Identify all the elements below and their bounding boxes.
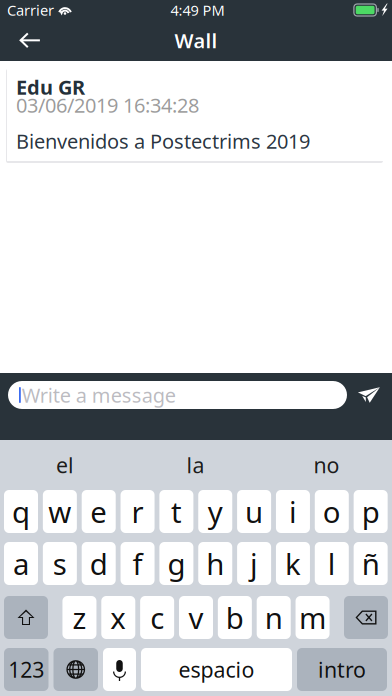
button[interactable]: e xyxy=(82,490,116,533)
staticText: x xyxy=(110,598,126,637)
button[interactable]: el xyxy=(0,440,130,490)
staticText: Write a message xyxy=(22,382,176,408)
button[interactable] xyxy=(53,648,98,691)
staticText: intro xyxy=(318,655,366,684)
staticText: r xyxy=(132,492,144,531)
staticText: i xyxy=(289,492,297,531)
staticText: g xyxy=(167,544,185,583)
button[interactable]: Write a message xyxy=(8,381,347,409)
button[interactable]: r xyxy=(121,490,155,533)
button[interactable]: b xyxy=(218,596,252,639)
staticText: 4:49 PM xyxy=(170,0,224,20)
button[interactable]: q xyxy=(4,490,38,533)
button[interactable]: f xyxy=(121,542,155,585)
button[interactable]: t xyxy=(159,490,193,533)
staticText: espacio xyxy=(178,655,254,684)
button[interactable] xyxy=(344,596,388,639)
staticText: e xyxy=(90,492,107,531)
button[interactable]: p xyxy=(354,490,388,533)
button[interactable]: d xyxy=(82,542,116,585)
button[interactable]: la xyxy=(130,440,261,490)
button[interactable]: y xyxy=(198,490,232,533)
staticText: v xyxy=(188,598,203,637)
staticText: Bienvenidos a Postectrims 2019 xyxy=(16,128,310,154)
staticText: u xyxy=(245,492,263,531)
button[interactable]: s xyxy=(43,542,77,585)
staticText: 123 xyxy=(8,655,44,684)
staticText: k xyxy=(285,544,301,583)
staticText: z xyxy=(72,598,86,637)
staticText: y xyxy=(208,492,223,531)
button[interactable]: no xyxy=(261,440,392,490)
button[interactable]: l xyxy=(315,542,349,585)
button[interactable]: i xyxy=(276,490,310,533)
button[interactable]: h xyxy=(198,542,232,585)
staticText: o xyxy=(323,492,341,531)
staticText: b xyxy=(226,598,244,637)
button[interactable]: x xyxy=(101,596,135,639)
button[interactable]: u xyxy=(237,490,271,533)
button[interactable]: g xyxy=(159,542,193,585)
button[interactable]: intro xyxy=(297,648,387,691)
staticText: f xyxy=(133,544,143,583)
button[interactable]: Send xyxy=(351,381,387,409)
staticText: q xyxy=(12,492,30,531)
button[interactable]: w xyxy=(43,490,77,533)
button[interactable]: ñ xyxy=(354,542,388,585)
staticText: h xyxy=(206,544,224,583)
staticText: Edu GR xyxy=(16,74,85,100)
button[interactable]: a xyxy=(4,542,38,585)
staticText: Wall xyxy=(174,27,217,54)
button[interactable]: v xyxy=(179,596,213,639)
button[interactable]: espacio xyxy=(141,648,292,691)
button[interactable]: c xyxy=(140,596,174,639)
staticText: no xyxy=(313,451,339,479)
staticText: la xyxy=(186,451,204,479)
staticText: p xyxy=(362,492,380,531)
staticText: t xyxy=(171,492,182,531)
button[interactable] xyxy=(103,648,136,691)
button[interactable] xyxy=(4,596,48,639)
staticText: s xyxy=(53,544,67,583)
staticText: 03/06/2019 16:34:28 xyxy=(16,92,199,118)
staticText: n xyxy=(265,598,283,637)
staticText: el xyxy=(56,451,74,479)
staticText: d xyxy=(90,544,108,583)
button[interactable]: n xyxy=(257,596,291,639)
staticText: Carrier xyxy=(7,0,54,20)
staticText: m xyxy=(299,598,326,637)
button[interactable]: o xyxy=(315,490,349,533)
button[interactable]: Back xyxy=(0,20,50,61)
button[interactable]: 123 xyxy=(4,648,48,691)
button[interactable]: k xyxy=(276,542,310,585)
staticText: ñ xyxy=(362,544,380,583)
staticText: a xyxy=(13,544,29,583)
staticText: c xyxy=(150,598,164,637)
staticText: l xyxy=(328,544,336,583)
button[interactable]: j xyxy=(237,542,271,585)
staticText: j xyxy=(250,544,258,583)
button[interactable]: m xyxy=(295,596,329,639)
staticText: w xyxy=(48,492,71,531)
button[interactable]: z xyxy=(62,596,96,639)
